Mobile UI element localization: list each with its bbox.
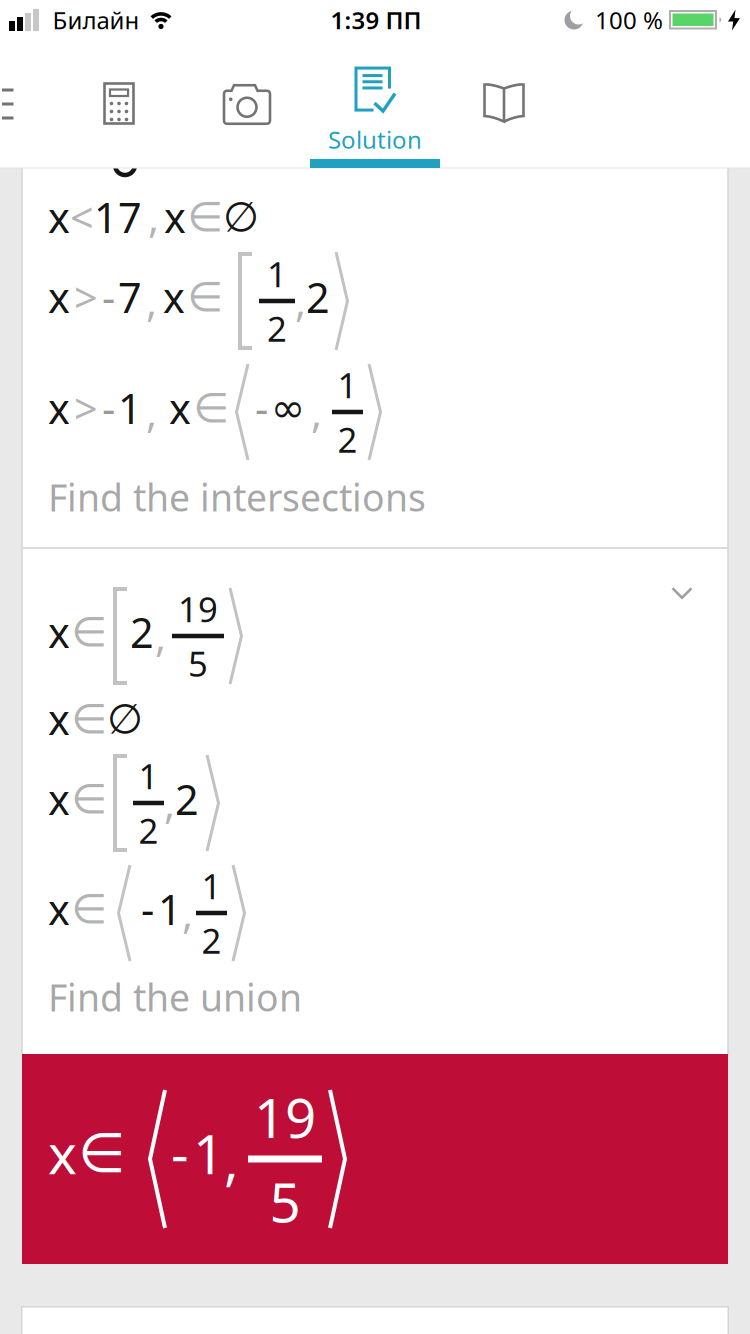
staticText: 2 — [130, 605, 154, 659]
staticText: x — [164, 190, 186, 244]
staticText: - — [255, 381, 268, 435]
staticText: 1 — [118, 381, 142, 435]
staticText: ∞ — [271, 384, 305, 431]
staticText: 2 — [267, 305, 287, 351]
staticText: , — [295, 274, 306, 328]
staticText: 1 — [201, 863, 221, 909]
staticText: ∈ — [78, 1122, 126, 1184]
staticText: ∅ — [107, 695, 143, 742]
staticText: , — [182, 886, 193, 940]
staticText: < — [70, 190, 94, 244]
staticText: ∈ — [71, 885, 107, 932]
staticText: x — [48, 772, 70, 826]
button[interactable]: Calculator — [89, 68, 149, 138]
staticText: - — [102, 381, 115, 435]
staticText: 2 — [138, 807, 158, 853]
staticText: 1 — [267, 251, 287, 297]
staticText: , — [155, 609, 166, 663]
staticText: , — [224, 1123, 239, 1195]
staticText: x — [48, 882, 70, 936]
staticText: , — [146, 274, 157, 328]
staticText: ∈ — [187, 273, 223, 320]
staticText: Find the intersections — [48, 472, 426, 522]
staticText: 1:39 ПП — [330, 4, 421, 36]
staticText: ∈ — [193, 384, 229, 431]
staticText: > — [74, 270, 98, 324]
staticText: 2 — [175, 772, 199, 826]
button[interactable]: Solution — [290, 61, 460, 161]
staticText: x — [48, 605, 70, 659]
staticText: ∈ — [187, 193, 223, 240]
staticText: x — [48, 1117, 77, 1189]
button[interactable]: Glossary — [469, 68, 539, 138]
staticText: - — [141, 882, 154, 936]
staticText: 1 — [138, 753, 158, 799]
button[interactable]: Menu — [0, 74, 28, 134]
staticText: , — [148, 190, 159, 244]
staticText: , — [311, 385, 322, 439]
staticText: Find the union — [48, 972, 302, 1022]
staticText: 1 — [158, 882, 182, 936]
staticText: 1 — [337, 362, 357, 408]
staticText: ∈ — [71, 775, 107, 822]
staticText: , — [164, 776, 175, 830]
staticText: x — [48, 381, 70, 435]
staticText: x — [48, 270, 70, 324]
staticText: x — [163, 270, 185, 324]
staticText: , — [146, 385, 157, 439]
staticText: ∅ — [223, 193, 259, 240]
staticText: x — [169, 381, 191, 435]
staticText: Solution — [328, 124, 422, 155]
staticText: 2 — [201, 917, 221, 963]
button[interactable]: Collapse step — [652, 568, 712, 618]
staticText: ∈ — [71, 695, 107, 742]
staticText: 7 — [118, 270, 142, 324]
staticText: 5 — [188, 640, 208, 686]
staticText: - — [102, 270, 115, 324]
staticText: - — [171, 1117, 189, 1189]
staticText: 5 — [269, 1165, 300, 1238]
staticText: x — [48, 190, 70, 244]
staticText: 2 — [306, 270, 330, 324]
staticText: 100 % — [595, 4, 663, 36]
staticText: ∈ — [71, 608, 107, 655]
staticText: x — [48, 692, 70, 746]
staticText: > — [74, 381, 98, 435]
staticText: 17 — [94, 190, 142, 244]
staticText: 2 — [337, 416, 357, 462]
staticText: 19 — [254, 1080, 316, 1153]
button[interactable]: Camera — [212, 69, 282, 139]
staticText: Билайн — [52, 4, 139, 36]
staticText: 19 — [178, 586, 218, 632]
staticText: 1 — [193, 1117, 224, 1189]
